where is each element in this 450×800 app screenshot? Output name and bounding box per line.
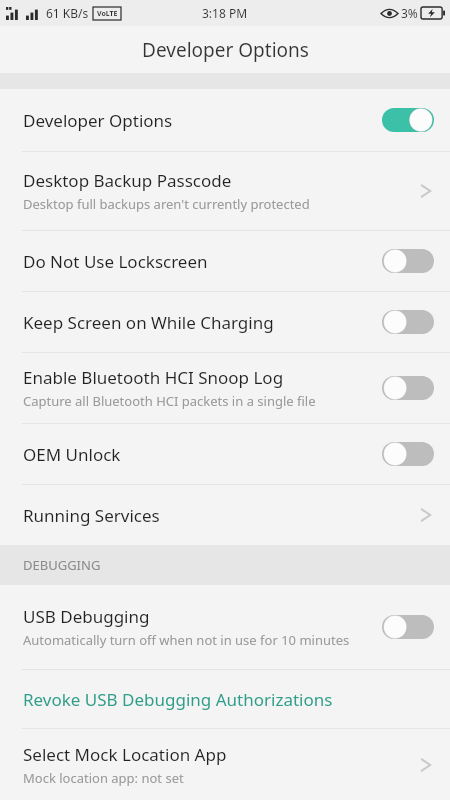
staticText: Keep Screen on While Charging xyxy=(23,311,274,334)
staticText: 61 KB/s xyxy=(46,5,89,21)
button[interactable]: OEM Unlock xyxy=(0,424,450,484)
button[interactable]: Off xyxy=(382,612,434,642)
staticText: Enable Bluetooth HCI Snoop Log xyxy=(23,366,284,389)
button[interactable]: Desktop Backup Passcode xyxy=(0,152,450,230)
staticText: 3:18 PM xyxy=(202,5,248,21)
button[interactable]: USB Debugging xyxy=(0,585,450,669)
staticText: Capture all Bluetooth HCI packets in a s… xyxy=(23,392,316,410)
button[interactable]: Keep Screen on While Charging xyxy=(0,292,450,352)
button[interactable]: Developer Options xyxy=(0,89,450,151)
button[interactable]: Enable Bluetooth HCI Snoop Log xyxy=(0,353,450,423)
staticText: USB Debugging xyxy=(23,605,150,628)
staticText: VoLTE xyxy=(97,9,118,19)
button[interactable]: Select Mock Location App xyxy=(0,729,450,800)
staticText: 3% xyxy=(401,5,418,21)
button[interactable]: Revoke USB Debugging Authorizations xyxy=(0,670,450,728)
button[interactable]: On xyxy=(382,105,434,135)
button[interactable]: Off xyxy=(382,439,434,469)
staticText: DEBUGGING xyxy=(23,556,101,574)
staticText: Desktop Backup Passcode xyxy=(23,169,232,192)
staticText: Mock location app: not set xyxy=(23,769,184,787)
staticText: Do Not Use Lockscreen xyxy=(23,250,208,273)
staticText: Automatically turn off when not in use f… xyxy=(23,631,350,649)
button[interactable]: Off xyxy=(382,307,434,337)
staticText: Select Mock Location App xyxy=(23,743,227,766)
staticText: Desktop full backups aren't currently pr… xyxy=(23,195,310,213)
button[interactable]: Off xyxy=(382,246,434,276)
other: Open xyxy=(420,505,432,525)
staticText: Revoke USB Debugging Authorizations xyxy=(23,688,333,711)
other: Open xyxy=(420,755,432,775)
other: Open xyxy=(420,181,432,201)
staticText: Developer Options xyxy=(23,109,173,132)
staticText: OEM Unlock xyxy=(23,443,121,466)
staticText: Running Services xyxy=(23,504,160,527)
staticText: Developer Options xyxy=(142,37,309,63)
button[interactable]: Do Not Use Lockscreen xyxy=(0,231,450,291)
button[interactable]: Running Services xyxy=(0,485,450,545)
button[interactable]: Off xyxy=(382,373,434,403)
